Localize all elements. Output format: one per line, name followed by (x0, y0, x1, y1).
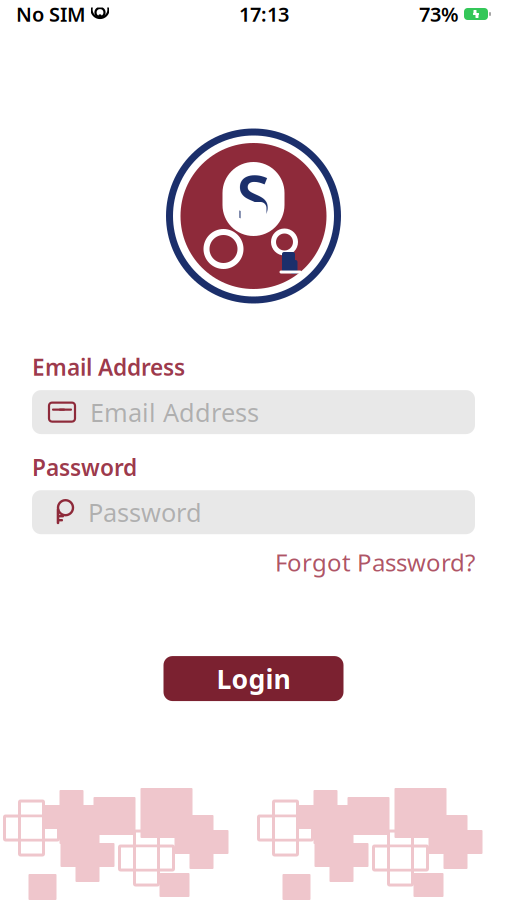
staticText: Password (88, 495, 202, 529)
button[interactable]: Email Address (32, 390, 475, 434)
staticText: Email Address (32, 352, 185, 382)
staticText: Email Address (90, 395, 259, 429)
staticText: No SIM (16, 1, 86, 27)
staticText: 73% (419, 1, 459, 27)
button[interactable]: Login (163, 656, 343, 701)
button[interactable]: Password (32, 490, 475, 534)
staticText: 17:13 (239, 1, 289, 27)
staticText: Forgot Password? (275, 546, 475, 578)
staticText: Password (32, 452, 137, 482)
staticText: Login (216, 661, 290, 696)
button[interactable]: Forgot Password? (275, 546, 475, 578)
staticText: S (236, 155, 270, 237)
